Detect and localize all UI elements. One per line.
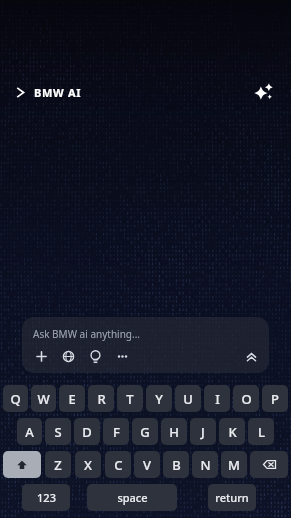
button[interactable]: Ask BMW ai anything... bbox=[22, 317, 269, 373]
button[interactable]: BMW AI bbox=[14, 85, 86, 100]
button[interactable]: X bbox=[75, 451, 101, 478]
button[interactable]: T bbox=[117, 385, 143, 412]
staticText: P bbox=[271, 390, 279, 408]
button[interactable]: Web search bbox=[60, 348, 77, 365]
staticText: 123 bbox=[37, 490, 56, 505]
button[interactable]: R bbox=[88, 385, 114, 412]
staticText: I bbox=[215, 390, 220, 408]
button[interactable]: W bbox=[31, 385, 56, 412]
button[interactable]: C bbox=[105, 451, 131, 478]
button[interactable]: H bbox=[161, 418, 187, 445]
button[interactable]: Q bbox=[3, 385, 28, 412]
staticText: return bbox=[215, 490, 249, 505]
staticText: space bbox=[117, 490, 148, 505]
button[interactable]: V bbox=[134, 451, 160, 478]
staticText: H bbox=[169, 423, 179, 441]
button[interactable]: L bbox=[248, 418, 274, 445]
button[interactable]: J bbox=[190, 418, 216, 445]
button[interactable]: return bbox=[208, 484, 256, 511]
staticText: J bbox=[201, 423, 205, 441]
staticText: N bbox=[200, 456, 211, 474]
staticText: E bbox=[68, 390, 76, 408]
staticText: K bbox=[228, 423, 237, 441]
staticText: W bbox=[37, 390, 50, 408]
staticText: Z bbox=[54, 456, 62, 474]
button[interactable]: U bbox=[175, 385, 201, 412]
staticText: BMW AI bbox=[34, 85, 82, 100]
staticText: G bbox=[140, 423, 150, 441]
staticText: C bbox=[114, 456, 123, 474]
staticText: U bbox=[183, 390, 193, 408]
button[interactable]: Backspace bbox=[250, 451, 288, 478]
staticText: Q bbox=[10, 390, 21, 408]
button[interactable]: F bbox=[103, 418, 129, 445]
staticText: D bbox=[82, 423, 92, 441]
button[interactable]: A bbox=[17, 418, 42, 445]
staticText: L bbox=[258, 423, 265, 441]
button[interactable]: K bbox=[219, 418, 245, 445]
button[interactable]: More options bbox=[114, 348, 131, 365]
staticText: Ask BMW ai anything... bbox=[33, 327, 141, 341]
staticText: V bbox=[143, 456, 151, 474]
button[interactable]: space bbox=[87, 484, 177, 511]
button[interactable]: Collapse bbox=[243, 348, 260, 365]
button[interactable]: G bbox=[132, 418, 158, 445]
button[interactable]: B bbox=[163, 451, 189, 478]
staticText: Y bbox=[155, 390, 163, 408]
button[interactable]: E bbox=[59, 385, 85, 412]
staticText: O bbox=[241, 390, 252, 408]
staticText: B bbox=[172, 456, 181, 474]
staticText: A bbox=[25, 423, 34, 441]
button[interactable]: AI sparkle bbox=[251, 79, 277, 105]
staticText: S bbox=[54, 423, 62, 441]
staticText: M bbox=[228, 456, 240, 474]
button[interactable]: Ideas bbox=[87, 348, 104, 365]
button[interactable]: N bbox=[192, 451, 218, 478]
staticText: R bbox=[97, 390, 106, 408]
button[interactable]: 123 bbox=[22, 484, 70, 511]
button[interactable]: S bbox=[45, 418, 71, 445]
button[interactable]: P bbox=[262, 385, 288, 412]
button[interactable]: M bbox=[221, 451, 247, 478]
staticText: T bbox=[126, 390, 134, 408]
button[interactable]: O bbox=[233, 385, 259, 412]
staticText: F bbox=[113, 423, 120, 441]
button[interactable]: Shift bbox=[3, 451, 41, 478]
button[interactable]: Y bbox=[146, 385, 172, 412]
button[interactable]: Add attachment bbox=[33, 348, 50, 365]
button[interactable]: D bbox=[74, 418, 100, 445]
button[interactable]: I bbox=[204, 385, 230, 412]
button[interactable]: Z bbox=[45, 451, 71, 478]
staticText: X bbox=[84, 456, 92, 474]
